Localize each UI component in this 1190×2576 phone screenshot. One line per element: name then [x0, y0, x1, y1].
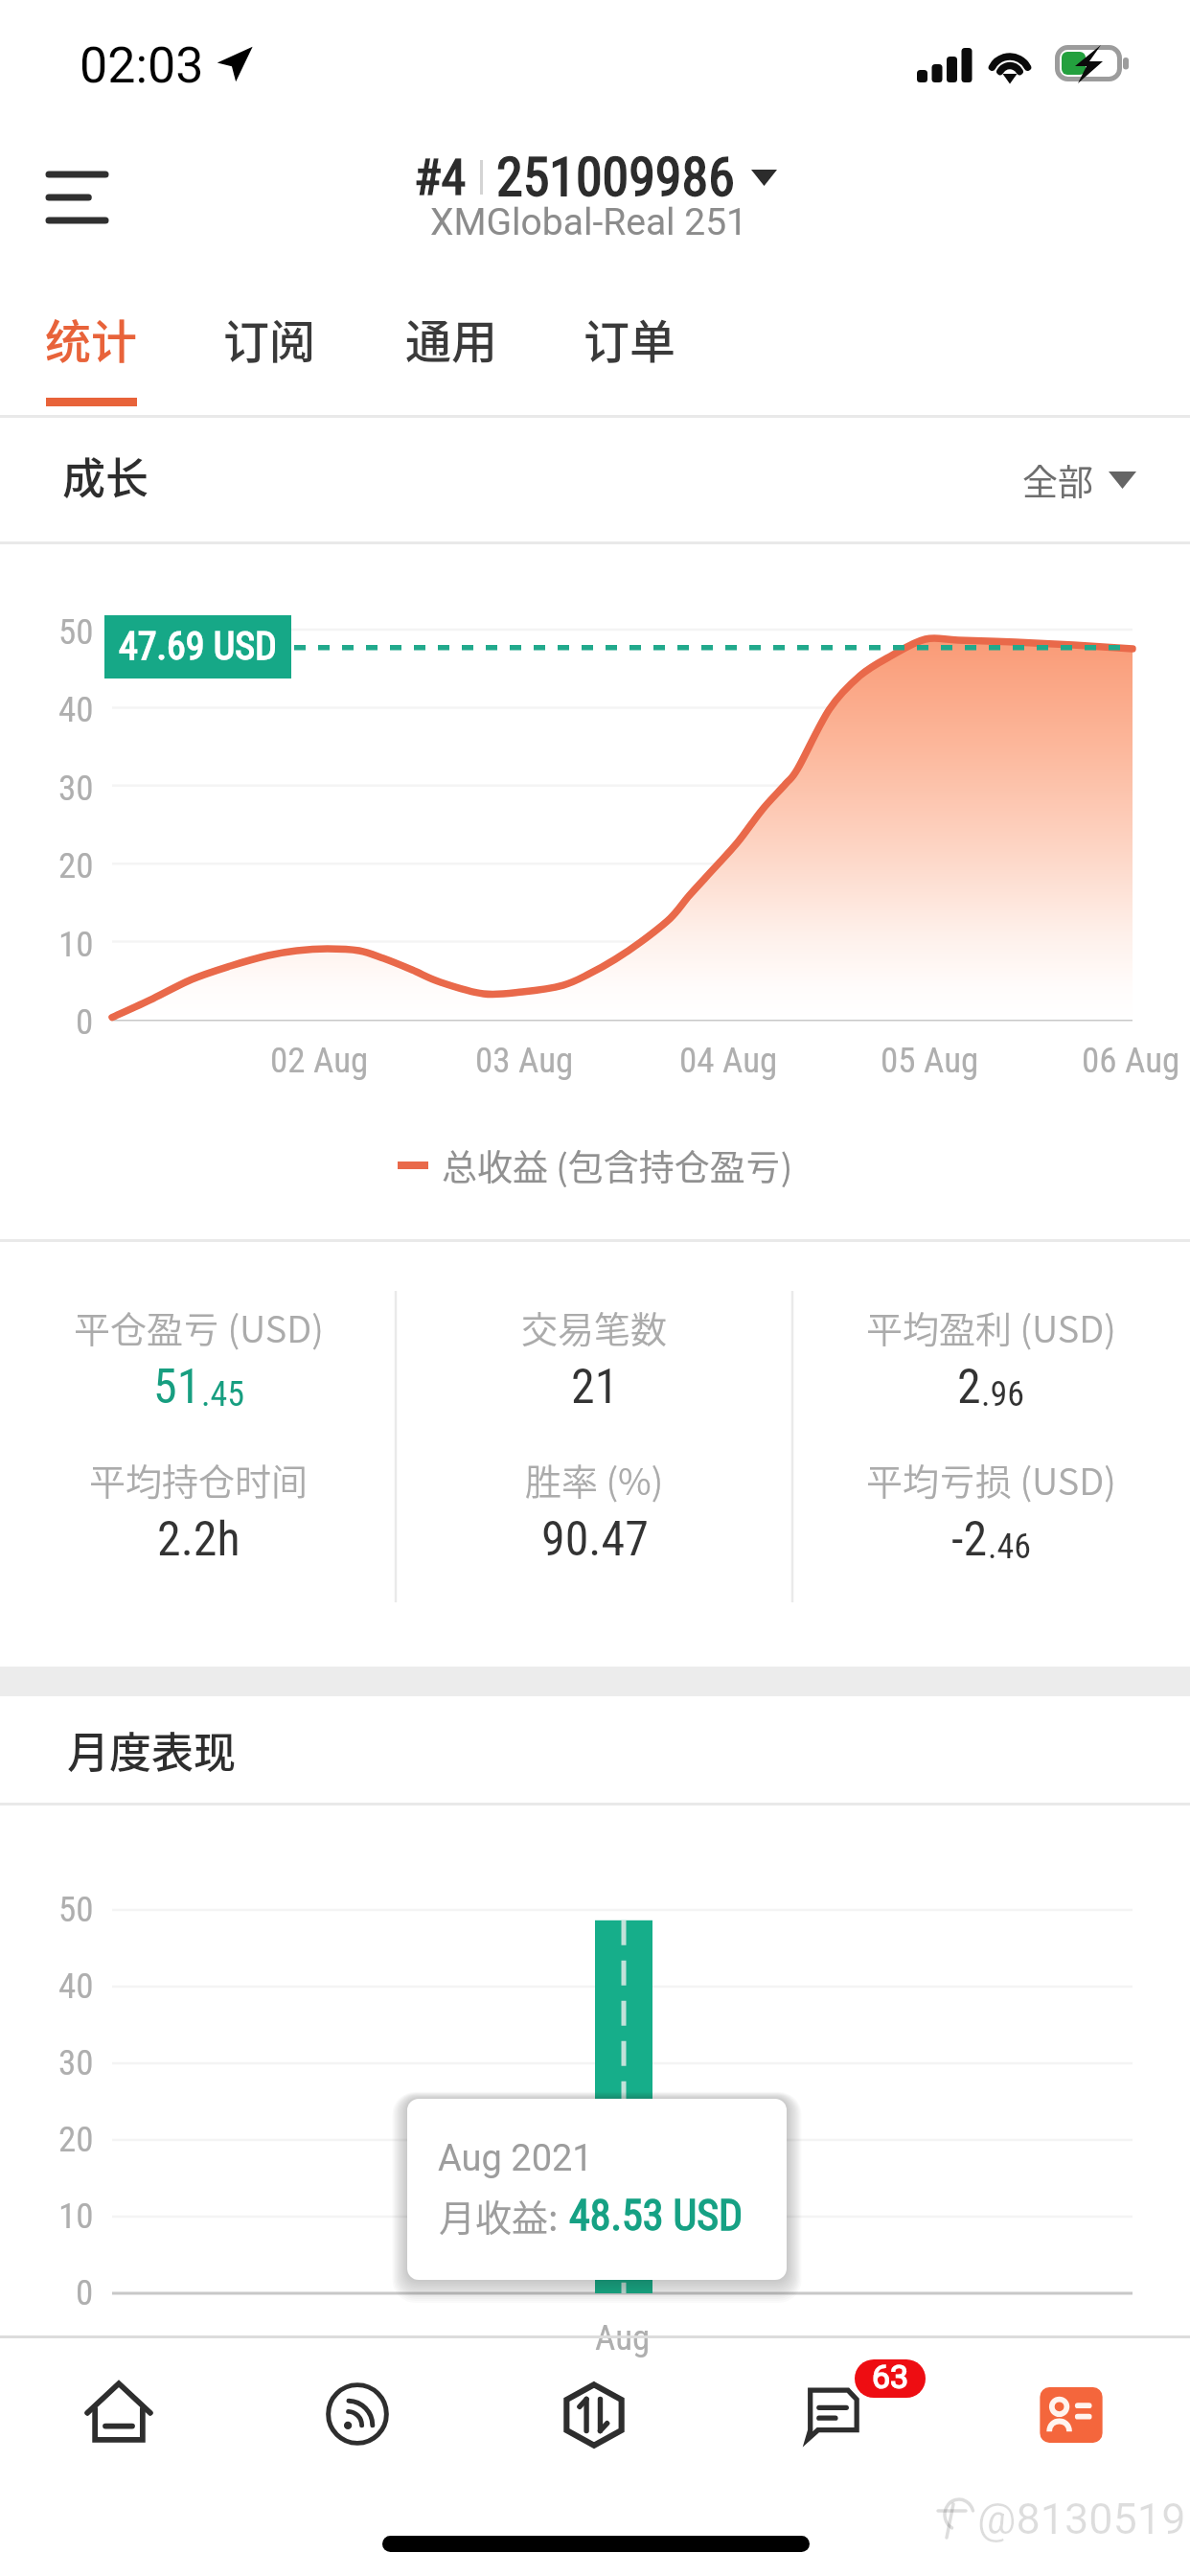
staticText: 90.47	[541, 1511, 649, 1568]
button[interactable]: Menu	[25, 149, 130, 249]
staticText: 订单	[584, 305, 676, 372]
staticText: 251009986	[496, 146, 735, 209]
staticText: 0	[76, 2272, 94, 2313]
button[interactable]: 统计	[27, 286, 156, 391]
button[interactable]: Feed	[290, 2347, 424, 2481]
staticText: 月收益:	[439, 2189, 559, 2242]
staticText: 40	[58, 689, 94, 730]
staticText: 20	[58, 2119, 94, 2160]
staticText: 04 Aug	[679, 1040, 778, 1081]
button[interactable]: Messages	[765, 2345, 899, 2479]
staticText: Aug	[595, 2317, 651, 2358]
staticText: 交易笔数	[521, 1300, 668, 1353]
staticText: 21	[571, 1359, 619, 1415]
staticText: 10	[58, 2196, 94, 2237]
staticText: Aug 2021	[438, 2137, 593, 2180]
button[interactable]: Trade	[527, 2348, 661, 2482]
staticText: 全部	[1022, 454, 1093, 506]
staticText: 50	[58, 611, 94, 653]
staticText: .96	[981, 1374, 1025, 1414]
staticText: 20	[58, 845, 94, 886]
staticText: 2.2h	[157, 1511, 240, 1568]
staticText: 51	[153, 1359, 201, 1415]
staticText: 总收益 (包含持仓盈亏)	[442, 1139, 793, 1191]
staticText: 47.69 USD	[119, 624, 277, 669]
staticText: XMGlobal-Real 251	[430, 200, 748, 244]
staticText: 胜率 (%)	[525, 1453, 664, 1506]
button[interactable]: 成长	[0, 418, 1190, 541]
staticText: 30	[58, 768, 94, 809]
staticText: @8130519	[977, 2494, 1186, 2544]
button[interactable]: 订单	[565, 286, 695, 391]
staticText: 通用	[405, 305, 498, 372]
staticText: 50	[58, 1889, 94, 1930]
staticText: 40	[58, 1966, 94, 2007]
staticText: 2	[957, 1359, 981, 1415]
staticText: .45	[201, 1374, 245, 1414]
staticText: 订阅	[223, 305, 316, 372]
staticText: 平均持仓时间	[89, 1453, 309, 1506]
staticText: 63	[872, 2359, 909, 2396]
staticText: 03 Aug	[475, 1040, 574, 1081]
staticText: 平仓盈亏 (USD)	[74, 1300, 324, 1353]
staticText: 30	[58, 2042, 94, 2083]
button[interactable]: 订阅	[205, 286, 334, 391]
staticText: 月度表现	[67, 1719, 236, 1781]
staticText: 统计	[45, 305, 138, 372]
button[interactable]: 通用	[387, 286, 516, 391]
staticText: 平均盈利 (USD)	[866, 1300, 1116, 1353]
staticText: 02 Aug	[270, 1040, 369, 1081]
staticText: 0	[76, 1001, 94, 1043]
staticText: 10	[58, 924, 94, 965]
staticText: 06 Aug	[1082, 1040, 1180, 1081]
staticText: -2	[951, 1511, 988, 1568]
button[interactable]: Home	[52, 2348, 186, 2482]
staticText: 平均亏损 (USD)	[866, 1453, 1116, 1506]
staticText: .46	[988, 1527, 1032, 1567]
staticText: 成长	[62, 445, 149, 507]
staticText: #4	[414, 149, 467, 207]
button[interactable]: Profile	[1004, 2348, 1138, 2482]
staticText: 48.53 USD	[569, 2191, 744, 2241]
staticText: 02:03	[80, 36, 204, 95]
staticText: 05 Aug	[881, 1040, 979, 1081]
